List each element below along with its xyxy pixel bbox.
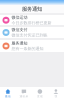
button[interactable]: 发现 — [32, 87, 48, 100]
staticText: 微信支付 — [11, 27, 27, 32]
staticText: 微信 — [5, 95, 11, 98]
button[interactable]: 我 — [48, 87, 64, 100]
button[interactable]: 微信 — [0, 87, 16, 100]
staticText: 微信支付凭证已到账 — [11, 33, 47, 38]
staticText: 发现 — [37, 95, 43, 98]
staticText: 今日步数排行榜已更新 — [11, 20, 51, 25]
staticText: 服务通知 — [22, 6, 42, 12]
staticText: 您有一条新的通知 — [11, 46, 43, 51]
button[interactable]: 微信支付 — [0, 27, 64, 38]
staticText: 服务通知 — [11, 41, 27, 46]
staticText: 我 — [54, 95, 57, 98]
staticText: 通讯录 — [19, 95, 28, 98]
staticText: 微信运动 — [11, 15, 27, 20]
button[interactable]: 通讯录 — [16, 87, 32, 100]
button[interactable]: 微信运动 — [0, 15, 64, 25]
button[interactable]: 服务通知 — [0, 40, 64, 52]
